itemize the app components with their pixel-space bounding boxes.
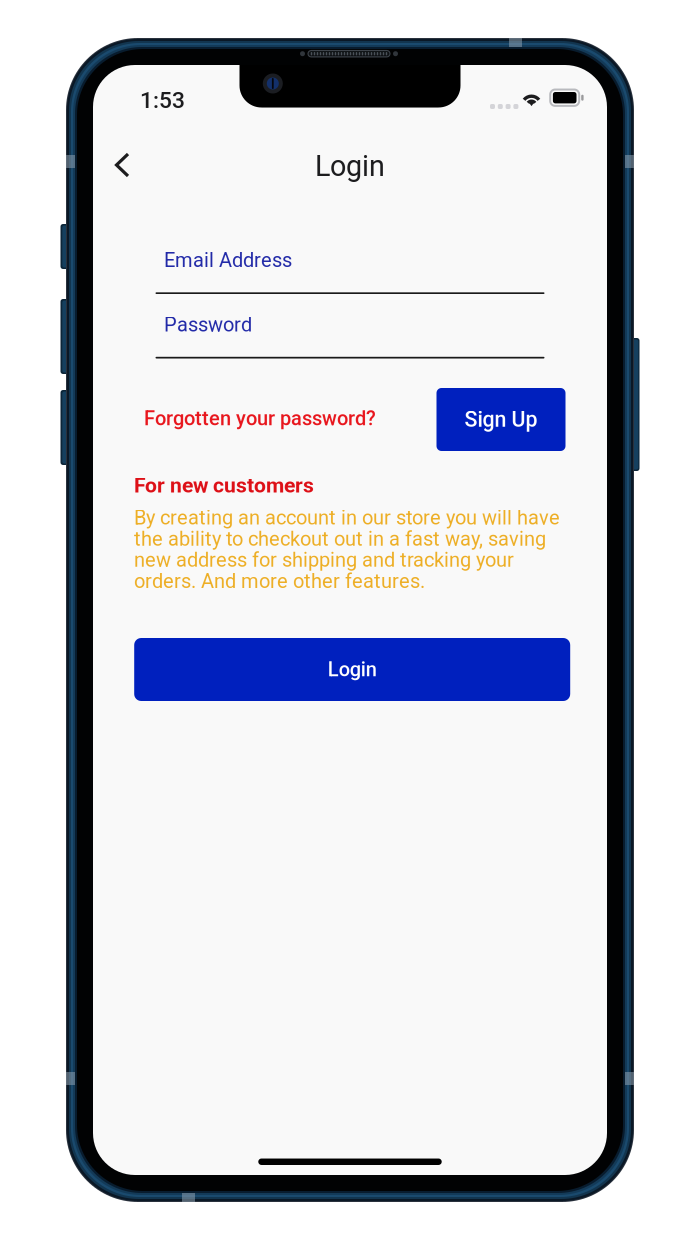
staticText: Forgotten your password? (144, 407, 376, 430)
button[interactable]: Email Address (155, 248, 544, 294)
button[interactable]: Sign Up (436, 388, 565, 451)
staticText: Sign Up (464, 407, 537, 432)
staticText: Login (315, 149, 385, 183)
staticText: Email Address (164, 248, 292, 272)
staticText: Login (328, 658, 377, 681)
button[interactable]: Back (98, 141, 146, 189)
staticText: By creating an account in our store you … (134, 506, 560, 593)
button[interactable]: Login (134, 638, 570, 701)
button[interactable]: Password (155, 313, 544, 359)
button[interactable]: Forgotten your password? (144, 403, 376, 433)
staticText: For new customers (134, 473, 314, 498)
staticText: Password (164, 313, 252, 336)
staticText: 1:53 (140, 87, 185, 114)
